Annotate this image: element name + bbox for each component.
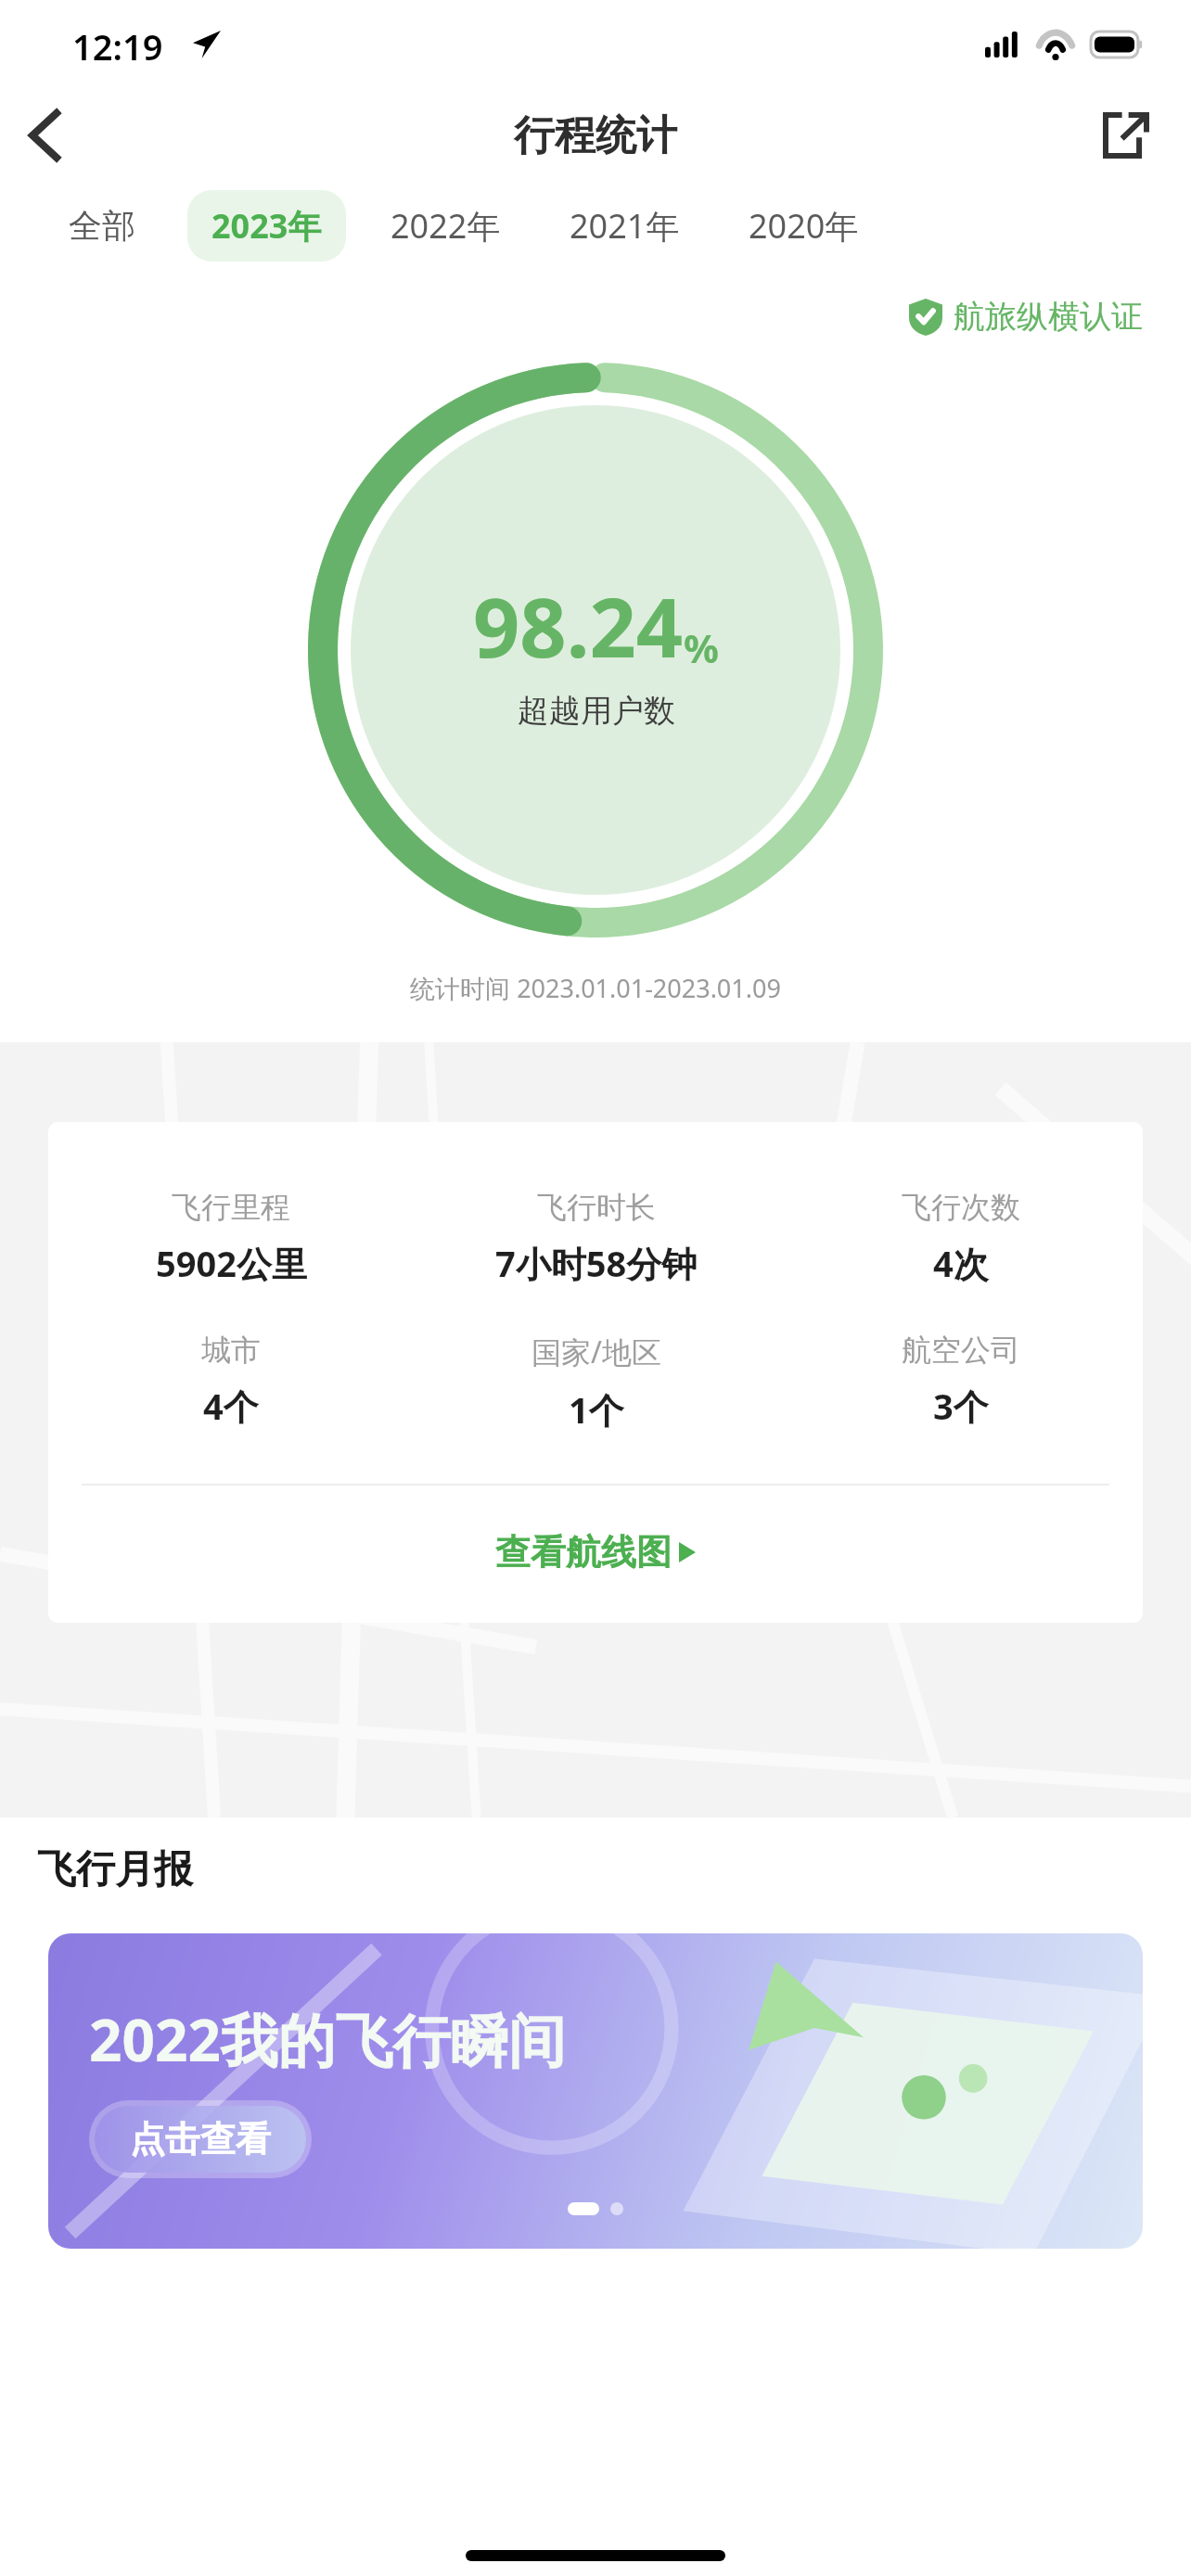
button[interactable]: 2021年	[545, 190, 704, 261]
staticText: 城市	[201, 1332, 261, 1369]
button[interactable]: 2023年	[187, 190, 346, 261]
staticText: 2022年	[391, 203, 501, 249]
button[interactable]: Back	[0, 91, 89, 180]
staticText: 全部	[69, 205, 135, 247]
staticText: 航旅纵横认证	[954, 297, 1143, 337]
button[interactable]: 点击查看	[95, 2106, 306, 2173]
staticText: 行程统计	[514, 110, 677, 161]
staticText: 4个	[203, 1382, 259, 1430]
staticText: 超越用户数	[518, 691, 675, 731]
staticText: 飞行里程	[172, 1189, 290, 1226]
button[interactable]: 2022我的飞行瞬间	[48, 1933, 1143, 2249]
button[interactable]: Share	[1089, 98, 1163, 172]
staticText: 2020年	[749, 203, 859, 249]
staticText: 航空公司	[902, 1332, 1020, 1369]
staticText: %	[684, 621, 719, 674]
staticText: 飞行时长	[537, 1189, 656, 1226]
staticText: 查看航线图	[495, 1530, 672, 1575]
staticText: 2023年	[211, 203, 322, 249]
staticText: 点击查看	[130, 2117, 271, 2162]
staticText: 12:19	[72, 22, 163, 70]
staticText: 飞行月报	[37, 1845, 193, 1894]
staticText: 统计时间 2023.01.01-2023.01.09	[0, 971, 1191, 1005]
button[interactable]: 查看航线图	[48, 1486, 1143, 1619]
staticText: 2021年	[570, 203, 680, 249]
button[interactable]: 2022年	[366, 190, 525, 261]
staticText: 1个	[569, 1385, 624, 1434]
button[interactable]: 2020年	[724, 190, 883, 261]
staticText: 3个	[933, 1382, 989, 1430]
staticText: 5902公里	[156, 1239, 307, 1287]
staticText: 飞行次数	[902, 1189, 1020, 1226]
staticText: 7小时58分钟	[495, 1239, 698, 1287]
staticText: 98.24	[473, 570, 684, 682]
button[interactable]: 全部	[45, 192, 160, 260]
staticText: 2022我的飞行瞬间	[89, 2000, 566, 2079]
staticText: 国家/地区	[531, 1332, 661, 1372]
staticText: 4次	[933, 1239, 989, 1287]
